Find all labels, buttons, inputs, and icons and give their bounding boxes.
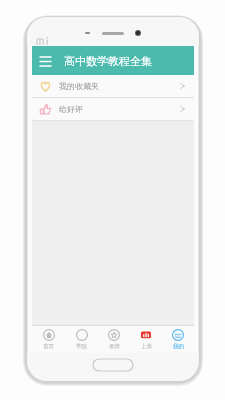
staticText: 学院: [76, 343, 87, 350]
staticText: 高中数学教程全集: [64, 54, 152, 68]
staticText: 推荐: [109, 343, 120, 350]
staticText: 我的收藏夹: [59, 81, 180, 91]
other: Home: [93, 359, 133, 371]
staticText: 给好评: [59, 104, 180, 114]
button[interactable]: Menu: [32, 48, 58, 74]
button[interactable]: 给好评: [32, 98, 194, 120]
button[interactable]: 学院: [65, 326, 98, 353]
button[interactable]: 我的收藏夹: [32, 75, 194, 97]
staticText: 我的: [173, 343, 184, 350]
button[interactable]: 首页: [32, 326, 65, 353]
staticText: 首页: [43, 343, 54, 350]
button[interactable]: 推荐: [98, 326, 130, 353]
button[interactable]: 上亲: [130, 326, 162, 353]
button[interactable]: 我的: [162, 326, 194, 353]
staticText: 上亲: [141, 343, 152, 350]
